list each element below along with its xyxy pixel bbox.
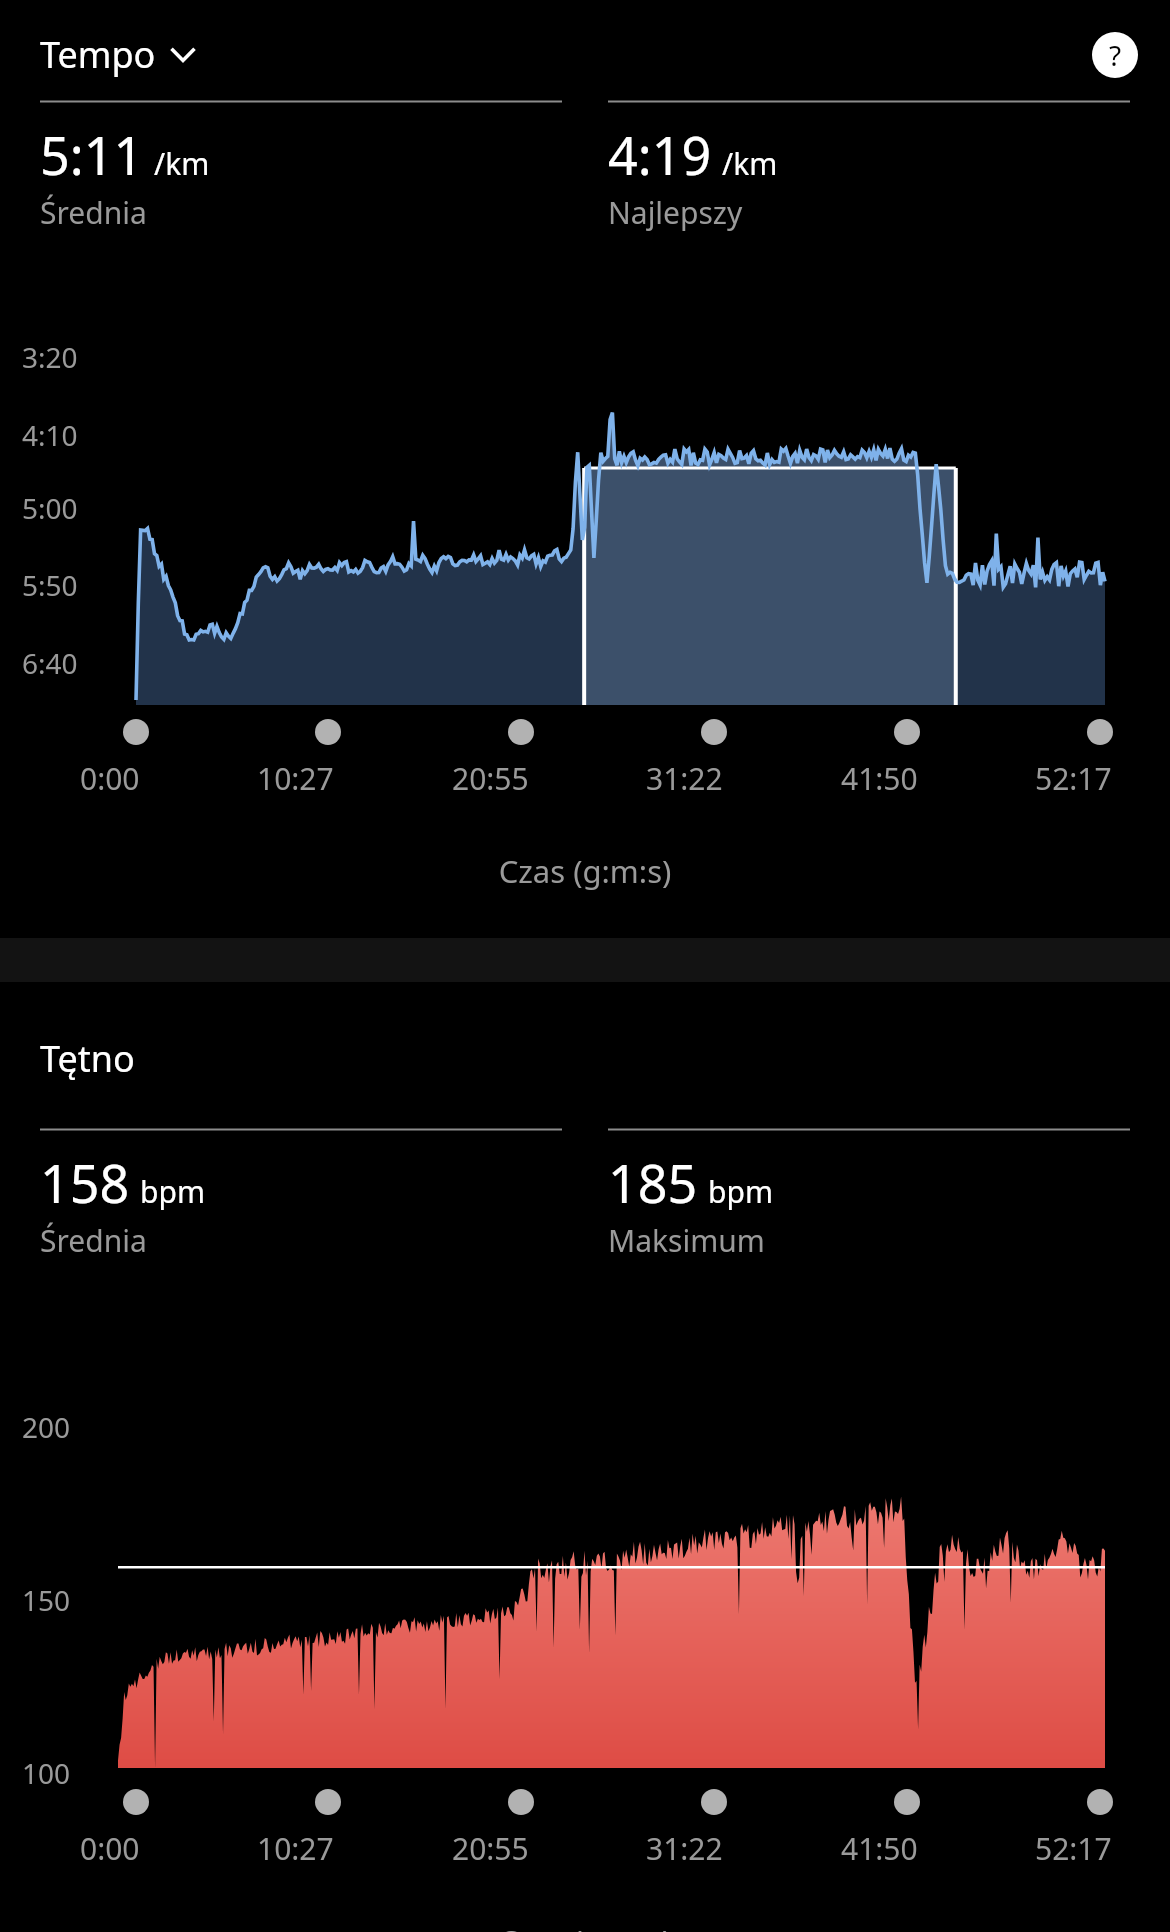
staticText: 100 bbox=[22, 1754, 71, 1790]
button[interactable]: 4:19 bbox=[608, 100, 1130, 233]
button[interactable]: 185 bbox=[608, 1128, 1130, 1261]
staticText: 4:10 bbox=[22, 416, 78, 454]
staticText: 31:22 bbox=[646, 1828, 723, 1869]
staticText: Średnia bbox=[40, 192, 147, 233]
staticText: Średnia bbox=[40, 1220, 147, 1261]
staticText: 150 bbox=[22, 1581, 71, 1619]
staticText: 52:17 bbox=[1035, 1828, 1112, 1869]
staticText: 41:50 bbox=[841, 758, 918, 799]
staticText: 10:27 bbox=[257, 758, 334, 799]
staticText: 0:00 bbox=[80, 758, 140, 799]
staticText: 200 bbox=[22, 1408, 71, 1446]
button[interactable]: Tempo bbox=[36, 22, 200, 87]
staticText: ? bbox=[1109, 36, 1122, 74]
staticText: 5:50 bbox=[22, 566, 78, 604]
staticText: 158 bbox=[40, 1147, 130, 1218]
staticText: bpm bbox=[708, 1171, 773, 1212]
button[interactable]: Pomoc bbox=[1092, 32, 1138, 78]
staticText: Czas (g:m:s) bbox=[0, 1920, 1170, 1932]
staticText: Czas (g:m:s) bbox=[0, 850, 1170, 892]
staticText: Tempo bbox=[40, 30, 156, 79]
staticText: Tętno bbox=[40, 1034, 135, 1083]
staticText: 4:19 bbox=[608, 119, 712, 190]
staticText: 20:55 bbox=[452, 1828, 529, 1869]
staticText: 20:55 bbox=[452, 758, 529, 799]
staticText: 5:11 bbox=[40, 119, 144, 190]
staticText: 185 bbox=[608, 1147, 698, 1218]
staticText: /km bbox=[722, 143, 778, 184]
staticText: 5:00 bbox=[22, 489, 78, 527]
staticText: /km bbox=[154, 143, 210, 184]
staticText: 41:50 bbox=[841, 1828, 918, 1869]
staticText: 10:27 bbox=[257, 1828, 334, 1869]
button[interactable]: 5:11 bbox=[40, 100, 562, 233]
staticText: Maksimum bbox=[608, 1220, 765, 1261]
staticText: Najlepszy bbox=[608, 192, 743, 233]
staticText: 6:40 bbox=[22, 644, 78, 682]
staticText: 31:22 bbox=[646, 758, 723, 799]
button[interactable]: 158 bbox=[40, 1128, 562, 1261]
staticText: 3:20 bbox=[22, 338, 78, 376]
staticText: 0:00 bbox=[80, 1828, 140, 1869]
staticText: 52:17 bbox=[1035, 758, 1112, 799]
staticText: bpm bbox=[140, 1171, 205, 1212]
